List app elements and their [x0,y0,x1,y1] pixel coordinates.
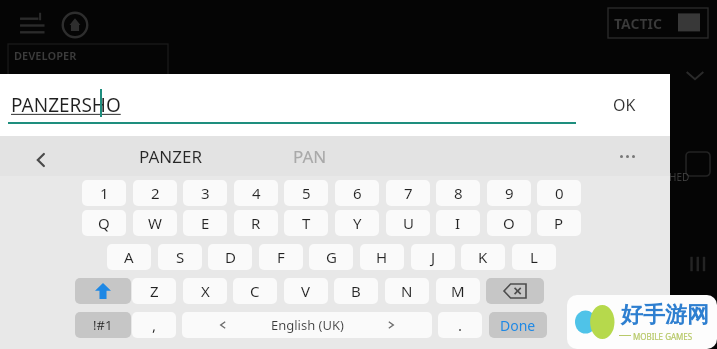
staticText: P [554,213,564,233]
staticText: I [455,213,461,233]
staticText: A [124,247,134,267]
staticText: DEVELOPER [14,48,77,63]
button[interactable]: Shift [75,278,131,304]
staticText: K [478,247,488,267]
button[interactable]: E [183,210,227,236]
staticText: PANZERSHO [11,92,121,118]
button[interactable]: 9 [487,180,531,206]
button[interactable]: , [132,312,176,338]
staticText: 1 [100,183,109,203]
button[interactable]: PANZERSHO [4,74,584,136]
button[interactable]: O [487,210,531,236]
button[interactable]: F [259,244,303,270]
staticText: G [326,247,337,267]
staticText: MOBILE GAMES [633,331,693,342]
staticText: 6 [353,183,362,203]
button[interactable]: 0 [537,180,581,206]
button[interactable]: Back [20,140,62,180]
button[interactable]: Y [335,210,379,236]
staticText: 4 [252,183,261,203]
button[interactable]: 4 [234,180,278,206]
staticText: Done [500,316,536,335]
staticText: N [401,281,413,301]
button[interactable]: More options [600,136,655,176]
staticText: 好手游网 [621,301,709,329]
button[interactable]: U [386,210,430,236]
button[interactable]: D [208,244,252,270]
staticText: Y [353,213,362,233]
button[interactable]: N [385,278,429,304]
staticText: W [148,213,162,233]
staticText: OK [613,94,636,116]
staticText: M [451,281,465,301]
button[interactable]: 1 [82,180,126,206]
button[interactable]: . [438,312,482,338]
button[interactable]: English (UK) [182,312,432,338]
staticText: B [351,281,361,301]
staticText: English (UK) [271,316,344,334]
button[interactable]: Z [132,278,176,304]
staticText: 3 [201,183,210,203]
button[interactable]: 2 [133,180,177,206]
button[interactable]: S [158,244,202,270]
staticText: L [530,247,538,267]
button[interactable]: 好手游网 [567,295,717,349]
staticText: E [201,213,210,233]
staticText: V [301,281,311,301]
staticText: 0 [555,183,564,203]
button[interactable]: Done [489,312,547,338]
button[interactable]: Menu [18,8,52,42]
staticText: D [225,247,236,267]
button[interactable]: C [233,278,277,304]
button[interactable]: T [284,210,328,236]
staticText: R [251,213,261,233]
button[interactable]: H [360,244,404,270]
staticText: 7 [404,183,413,203]
button[interactable]: !#1 [75,312,131,338]
button[interactable]: 6 [335,180,379,206]
staticText: 5 [302,183,311,203]
button[interactable]: K [461,244,505,270]
button[interactable]: OK [595,88,653,122]
button[interactable]: 5 [284,180,328,206]
staticText: H [376,247,388,267]
button[interactable]: L [512,244,556,270]
button[interactable]: 8 [436,180,480,206]
staticText: Z [150,281,159,301]
button[interactable]: J [411,244,455,270]
button[interactable]: 3 [183,180,227,206]
button[interactable]: X [183,278,227,304]
staticText: . [458,315,463,335]
staticText: 8 [454,183,463,203]
button[interactable]: W [133,210,177,236]
staticText: O [503,213,515,233]
button[interactable]: B [334,278,378,304]
button[interactable]: A [107,244,151,270]
button[interactable]: G [309,244,353,270]
staticText: S [176,247,185,267]
button[interactable]: R [234,210,278,236]
staticText: PANZER [139,145,202,168]
button[interactable]: M [436,278,480,304]
button[interactable]: P [537,210,581,236]
staticText: U [403,213,414,233]
staticText: F [277,247,285,267]
staticText: T [302,213,311,233]
staticText: 2 [151,183,160,203]
staticText: J [431,247,436,267]
staticText: !#1 [93,316,113,334]
button[interactable]: I [436,210,480,236]
button[interactable]: PANZER [100,136,240,176]
staticText: X [201,281,210,301]
staticText: Q [98,213,110,233]
staticText: TACTIC [614,14,663,33]
button[interactable]: 7 [386,180,430,206]
button[interactable]: Home [58,8,92,42]
staticText: HED [669,170,690,184]
button[interactable]: Backspace [486,278,544,304]
staticText: 9 [505,183,514,203]
button[interactable]: Q [82,210,126,236]
button[interactable]: V [284,278,328,304]
staticText: C [250,281,260,301]
button[interactable]: PAN [255,136,365,176]
